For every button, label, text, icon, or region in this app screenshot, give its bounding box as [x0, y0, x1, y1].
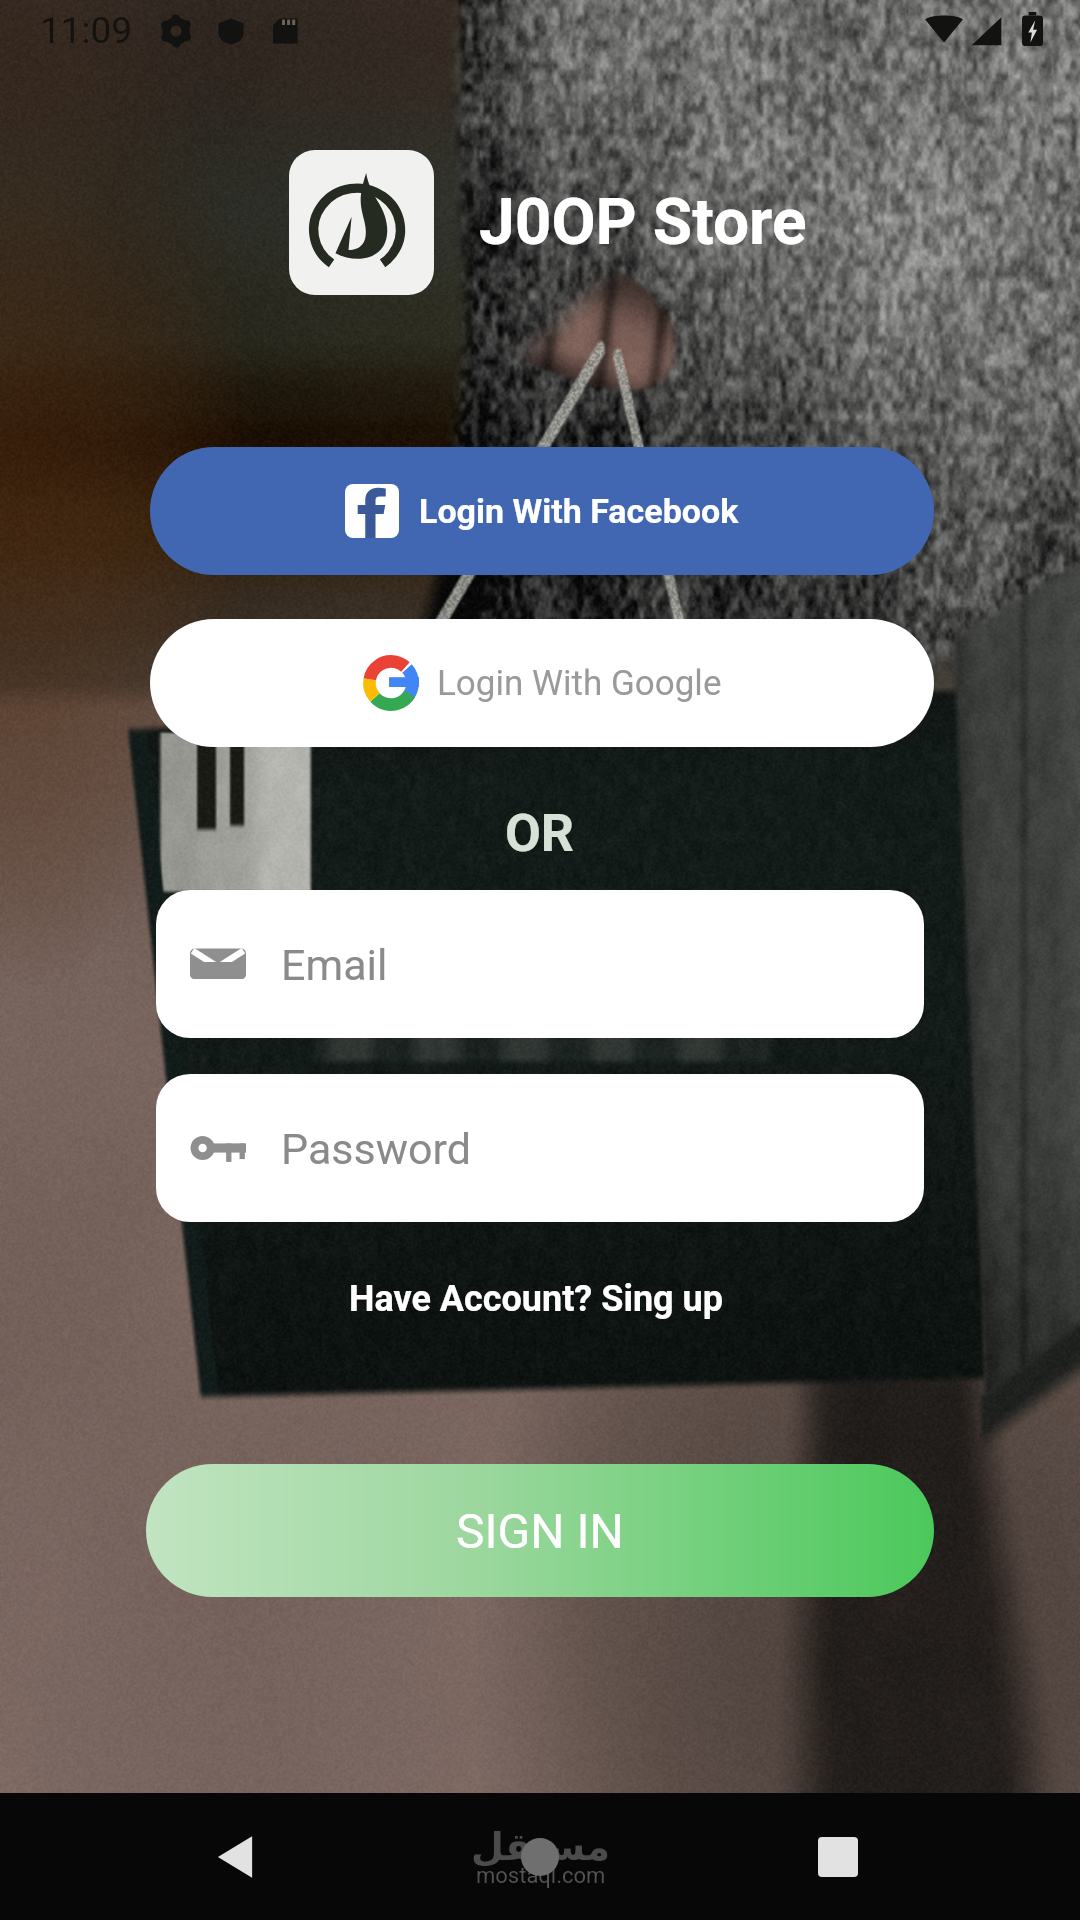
staticText: SIGN IN [456, 1503, 624, 1559]
button[interactable]: Back [180, 1802, 290, 1912]
button[interactable]: SIGN IN [146, 1464, 934, 1597]
button[interactable]: Password [156, 1074, 924, 1222]
staticText: mostaql.com [476, 1863, 606, 1889]
staticText: OR [505, 803, 575, 864]
staticText: مستقل [471, 1825, 610, 1869]
staticText: Login With Facebook [419, 491, 739, 531]
staticText: Have Account? Sing up [349, 1278, 724, 1320]
button[interactable]: Login With Google [150, 619, 934, 747]
button[interactable]: Home [460, 1793, 620, 1920]
button[interactable]: App logo [289, 150, 434, 295]
staticText: Login With Google [437, 663, 722, 704]
staticText: Email [281, 940, 388, 990]
staticText: 11:09 [40, 9, 133, 52]
staticText: Password [281, 1124, 471, 1174]
button[interactable]: Email [156, 890, 924, 1038]
button[interactable]: Have Account? Sing up [345, 1276, 728, 1322]
button[interactable]: Login With Facebook [150, 447, 934, 575]
staticText: J0OP Store [479, 185, 807, 260]
button[interactable]: Recents [783, 1802, 893, 1912]
